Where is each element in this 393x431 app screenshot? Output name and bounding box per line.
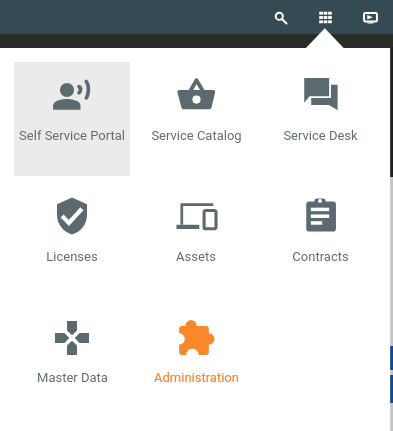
- staticText: Self Service Portal: [19, 128, 125, 143]
- staticText: Service Catalog: [151, 128, 242, 143]
- button[interactable]: Display: [348, 0, 393, 34]
- staticText: Assets: [176, 249, 216, 264]
- button[interactable]: Contracts: [262, 183, 378, 297]
- button[interactable]: Licenses: [14, 183, 130, 297]
- button[interactable]: Self Service Portal: [14, 62, 130, 176]
- staticText: Master Data: [37, 370, 108, 385]
- staticText: Service Desk: [283, 128, 358, 143]
- button[interactable]: Search: [258, 0, 303, 34]
- staticText: Licenses: [46, 249, 98, 264]
- button[interactable]: Service Catalog: [138, 62, 254, 176]
- button[interactable]: Master Data: [14, 304, 130, 418]
- button[interactable]: Administration: [138, 304, 254, 418]
- button[interactable]: Service Desk: [262, 62, 378, 176]
- staticText: Administration: [154, 370, 239, 385]
- button[interactable]: Assets: [138, 183, 254, 297]
- staticText: Contracts: [292, 249, 349, 264]
- button[interactable]: Apps: [303, 0, 348, 34]
